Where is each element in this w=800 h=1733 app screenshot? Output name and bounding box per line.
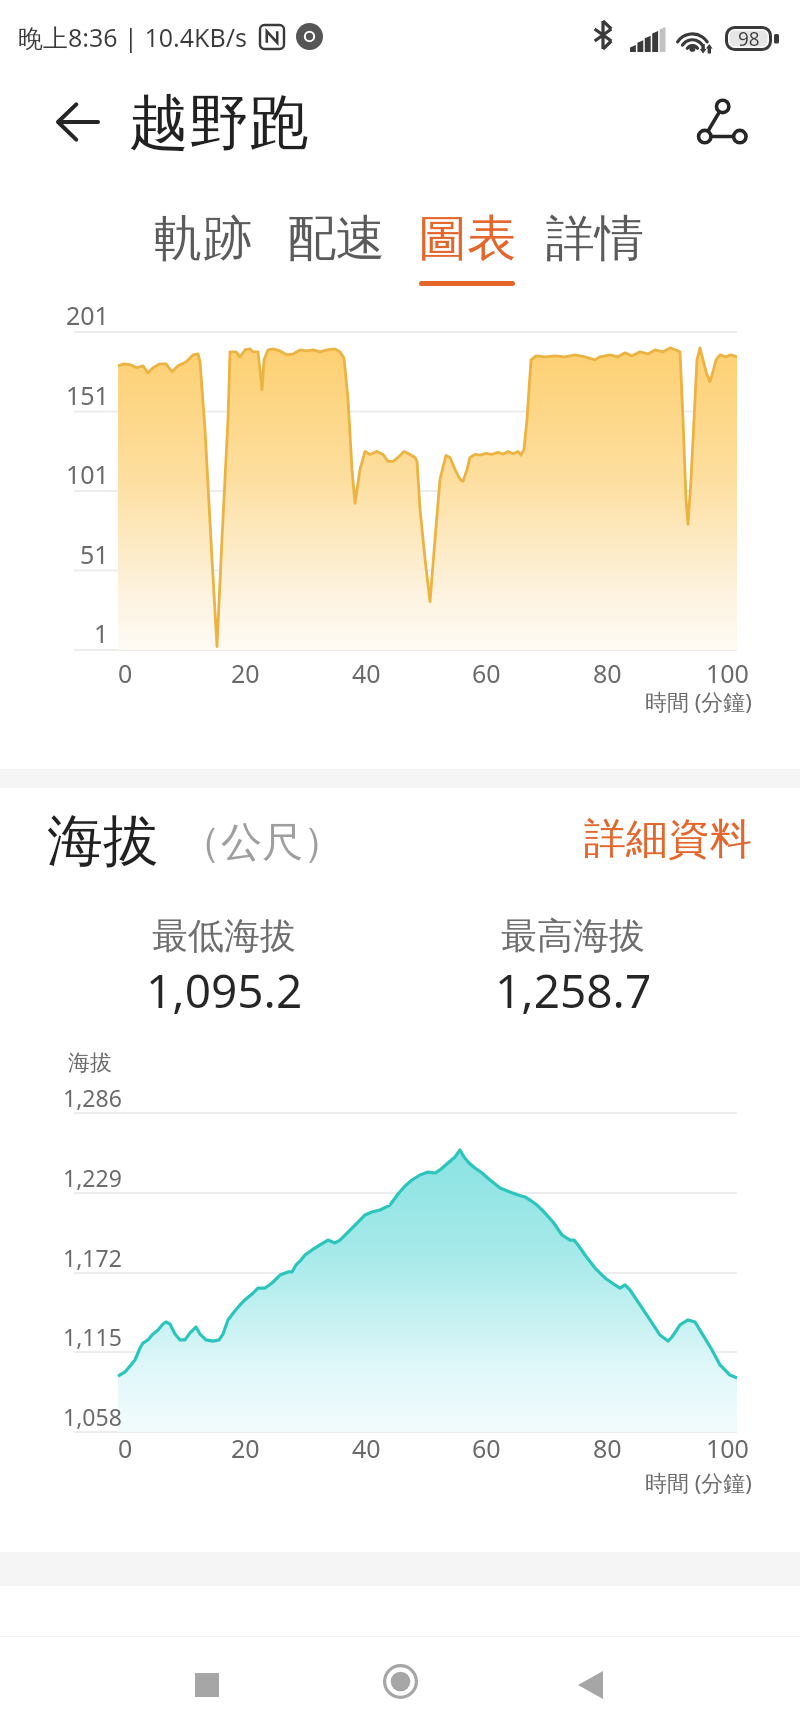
staticText: 配速 [287,208,385,270]
button[interactable]: Share [688,92,748,152]
staticText: 40 [352,1431,381,1465]
staticText: 1,058 [63,1401,122,1432]
staticText: 1,258.7 [495,959,652,1022]
button[interactable]: 配速 [274,198,398,290]
staticText: 20 [231,656,260,690]
staticText: 晚上8:36 | 10.4KB/s [18,20,247,54]
button[interactable]: Recents [140,1636,274,1733]
staticText: 98 [738,26,760,51]
staticText: 0 [118,1431,133,1465]
staticText: 20 [231,1431,260,1465]
staticText: 1,286 [63,1082,122,1113]
button[interactable]: 軌跡 [141,198,265,290]
staticText: 0 [118,656,133,690]
staticText: 1 [94,616,109,650]
staticText: 時間 (分鐘) [645,1467,752,1497]
button[interactable]: Home [333,1636,467,1733]
button[interactable]: Back [523,1636,657,1733]
staticText: 100 [706,1431,749,1465]
staticText: 越野跑 [129,85,309,161]
staticText: 60 [472,1431,501,1465]
button[interactable]: Back [50,98,106,146]
staticText: 海拔 [68,1049,112,1077]
staticText: 圖表 [418,208,516,270]
staticText: 1,172 [63,1242,122,1273]
staticText: 101 [66,457,109,491]
staticText: 100 [706,656,749,690]
staticText: （公尺） [180,817,344,869]
staticText: 軌跡 [154,208,252,270]
staticText: 1,115 [63,1321,122,1352]
staticText: 201 [66,298,109,332]
staticText: 詳情 [546,208,644,270]
button[interactable]: 詳細資料 [570,808,766,870]
button[interactable]: 圖表 [405,198,529,290]
staticText: 80 [593,656,622,690]
staticText: 詳細資料 [584,813,752,866]
staticText: 51 [80,537,109,571]
staticText: 海拔 [47,806,159,877]
staticText: 時間 (分鐘) [645,686,752,716]
button[interactable]: 詳情 [533,198,657,290]
staticText: 最低海拔 [152,913,296,958]
staticText: 80 [593,1431,622,1465]
staticText: 1,229 [63,1162,122,1193]
staticText: 最高海拔 [501,913,645,958]
staticText: 151 [66,378,109,412]
staticText: 60 [472,656,501,690]
staticText: 40 [352,656,381,690]
staticText: 1,095.2 [146,959,303,1022]
